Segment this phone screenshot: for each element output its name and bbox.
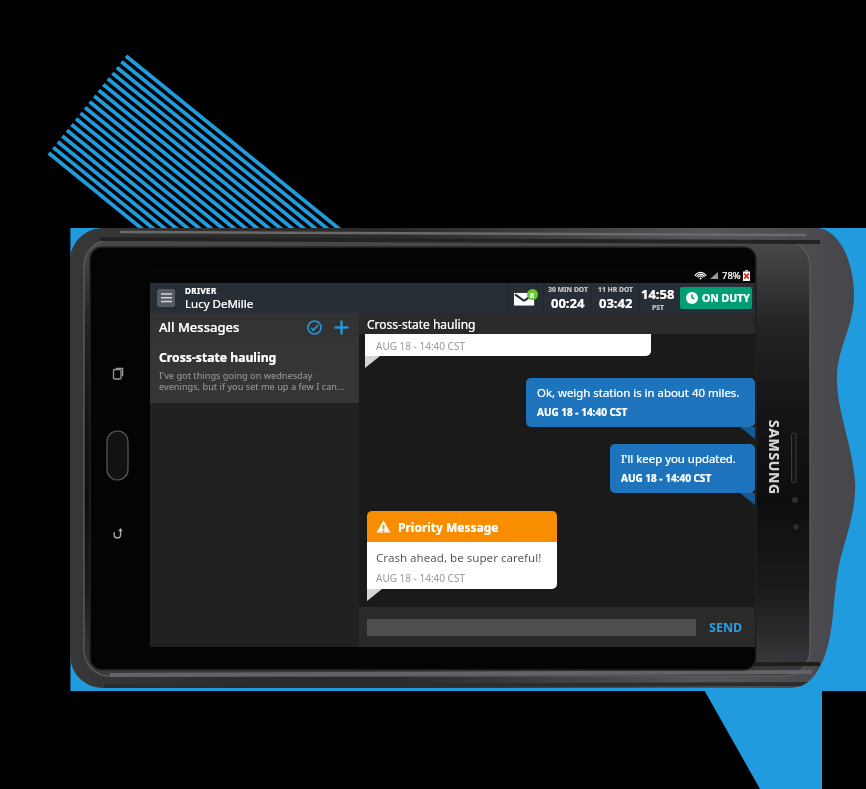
button[interactable]: ON DUTY [680,287,752,309]
button[interactable]: 14:58 [640,283,676,313]
staticText: I'll keep you updated. [621,451,736,467]
button[interactable]: Mark all read [303,316,325,338]
staticText: DRIVER [185,285,217,296]
staticText: 8 [530,290,535,300]
staticText: AUG 18 - 14:40 CST [621,471,712,485]
staticText: Cross-state hauling [159,349,277,366]
staticText: PST [652,303,664,312]
staticText: SAMSUNG [765,420,784,495]
staticText: Priority Message [398,519,499,535]
staticText: AUG 18 - 14:40 CST [376,339,465,353]
button[interactable]: DRIVER [150,283,359,313]
staticText: 30 MIN DOT [548,285,588,294]
other: Home [104,428,132,484]
staticText: 14:58 [641,285,675,303]
staticText: ON DUTY [702,291,750,305]
staticText: Lucy DeMille [185,296,254,312]
button[interactable]: 11 HR DOT [592,283,639,313]
staticText: AUG 18 - 14:40 CST [376,571,465,585]
other: Recent apps [112,367,126,381]
staticText: Ok, weigh station is in about 40 miles. [537,385,740,401]
staticText: AUG 18 - 14:40 CST [537,405,628,419]
button[interactable]: SEND [707,619,745,636]
button[interactable]: 30 MIN DOT [544,283,591,313]
staticText: 11 HR DOT [598,285,634,294]
staticText: All Messages [159,318,240,336]
staticText: 78% [722,269,741,282]
staticText: 00:24 [551,294,585,312]
button[interactable]: Messages [509,283,543,313]
button[interactable]: Cross-state hauling [150,341,359,403]
staticText: SEND [709,619,743,636]
staticText: Crash ahead, be super careful! [376,550,542,566]
staticText: I've got things going on wednesday eveni… [159,369,345,393]
staticText: 03:42 [599,294,633,312]
button[interactable]: New message [330,316,352,338]
staticText: Cross-state hauling [367,316,476,332]
other: Back [111,526,125,540]
